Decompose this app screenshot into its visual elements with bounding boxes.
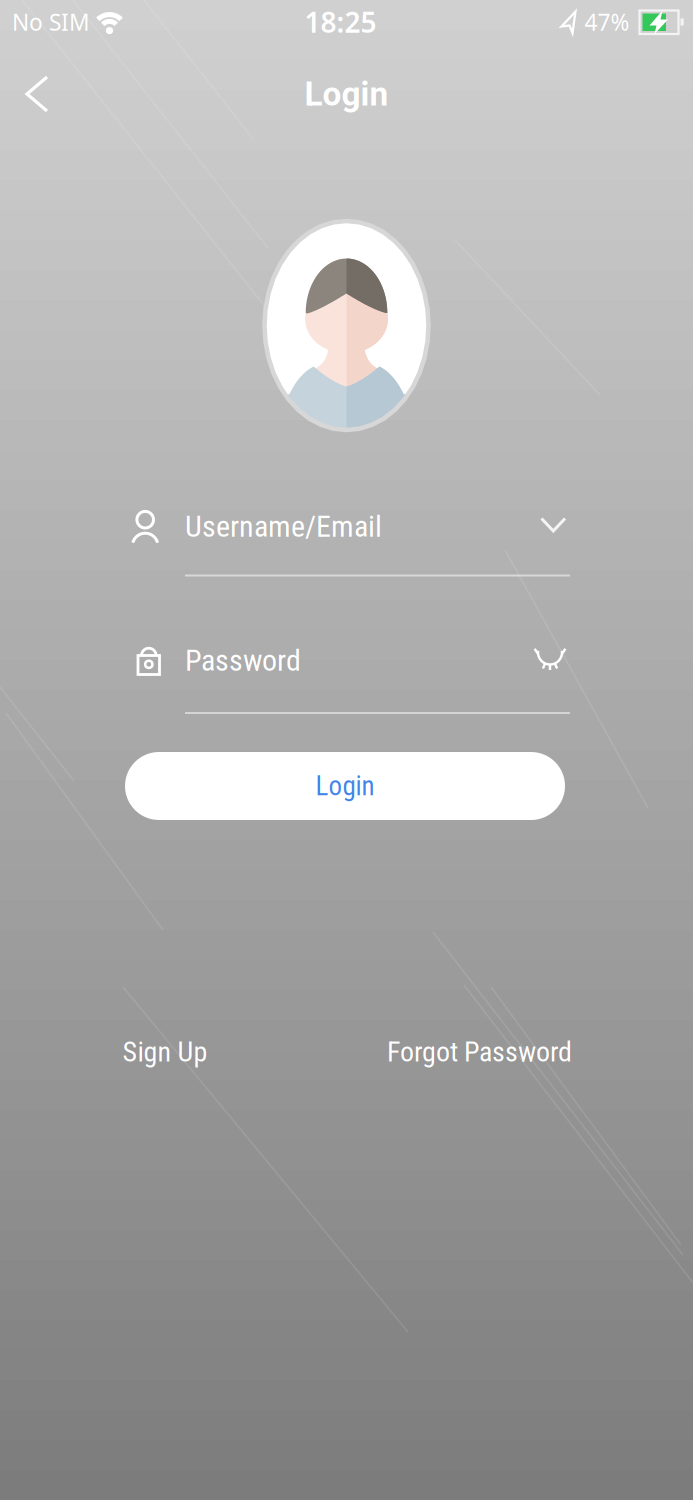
button[interactable]: Username/Email [116,488,577,582]
button[interactable]: Back [14,74,60,114]
staticText: Forgot Password [387,1036,572,1068]
staticText: 18:25 [304,3,376,41]
button[interactable]: Show password [528,642,572,678]
staticText: 47% [584,7,629,37]
staticText: Username/Email [185,509,382,544]
button[interactable]: Sign Up [75,1022,255,1082]
staticText: No SIM [12,7,90,37]
staticText: Login [304,74,388,114]
button[interactable]: Login [125,752,565,820]
staticText: Password [185,643,301,678]
button[interactable]: Password [116,622,577,716]
staticText: Login [315,770,374,802]
button[interactable]: Forgot Password [319,1022,639,1082]
staticText: Sign Up [122,1036,207,1068]
